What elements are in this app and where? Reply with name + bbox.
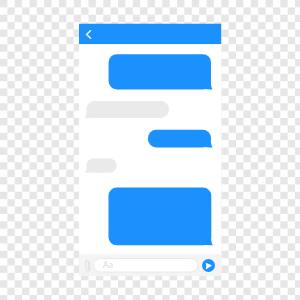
staticText: Aa [103, 259, 114, 271]
button[interactable]: Aa [94, 258, 198, 272]
button[interactable]: Attach file [84, 259, 92, 272]
button[interactable]: Send [202, 259, 215, 272]
button[interactable]: Back [82, 27, 95, 40]
